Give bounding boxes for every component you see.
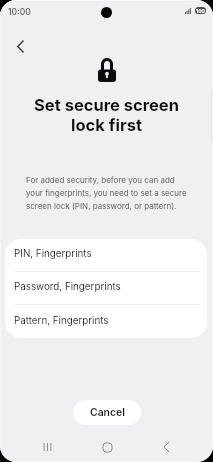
button[interactable]: Pattern, Fingerprints: [5, 305, 207, 338]
staticText: Set secure screen: [0, 95, 213, 115]
staticText: Pattern, Fingerprints: [14, 315, 109, 327]
button[interactable]: Navigate up: [5, 31, 35, 61]
staticText: lock first: [0, 115, 213, 135]
button[interactable]: Back: [151, 435, 181, 459]
staticText: 100: [196, 8, 205, 14]
button[interactable]: PIN, Fingerprints: [5, 239, 207, 272]
staticText: Password, Fingerprints: [14, 281, 121, 293]
button[interactable]: Cancel: [73, 400, 141, 425]
button[interactable]: Recent apps: [32, 435, 62, 459]
staticText: 10:00: [8, 7, 31, 17]
button[interactable]: Password, Fingerprints: [5, 272, 207, 305]
staticText: PIN, Fingerprints: [14, 248, 92, 260]
staticText: Cancel: [90, 406, 125, 419]
staticText: For added security, before you can add y…: [26, 175, 209, 211]
button[interactable]: Home: [92, 435, 122, 459]
